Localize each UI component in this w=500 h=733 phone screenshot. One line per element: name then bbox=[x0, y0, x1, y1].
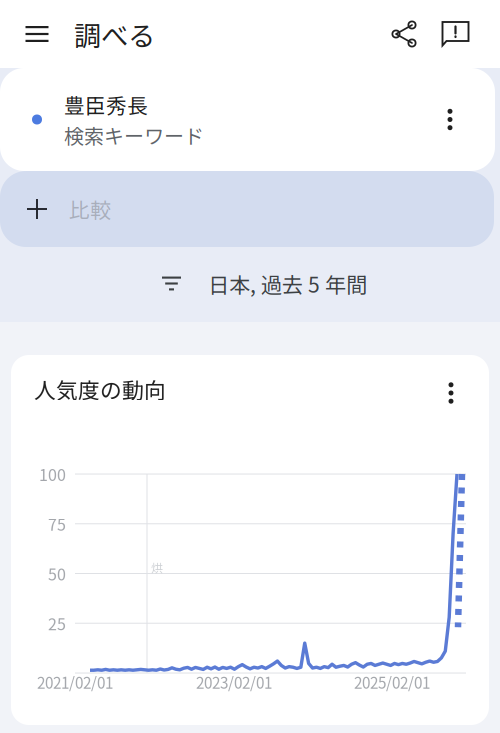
button[interactable]: 日本, 過去 5 年間 bbox=[0, 247, 500, 320]
button[interactable]: Send feedback bbox=[430, 0, 500, 68]
staticText: 2021/02/01 bbox=[37, 671, 113, 693]
staticText: 人気度の動向 bbox=[34, 373, 166, 405]
button[interactable]: Share bbox=[380, 0, 430, 68]
button[interactable]: More options bbox=[434, 376, 468, 410]
staticText: 調べる bbox=[74, 14, 155, 54]
button[interactable]: 豊臣秀長 bbox=[0, 68, 495, 171]
staticText: 検索キーワード bbox=[64, 120, 204, 149]
button[interactable]: 比較 bbox=[0, 171, 494, 247]
staticText: 2023/02/01 bbox=[196, 671, 272, 693]
staticText: 比較 bbox=[69, 194, 111, 224]
staticText: 烘 bbox=[151, 559, 163, 576]
button[interactable]: Menu bbox=[0, 0, 63, 68]
button[interactable]: More options bbox=[433, 102, 467, 136]
staticText: 豊臣秀長 bbox=[64, 90, 148, 119]
staticText: 50 bbox=[48, 562, 66, 585]
staticText: 日本, 過去 5 年間 bbox=[208, 268, 367, 299]
staticText: 100 bbox=[39, 462, 66, 486]
staticText: 2025/02/01 bbox=[354, 671, 430, 693]
staticText: 75 bbox=[48, 512, 66, 535]
staticText: 25 bbox=[48, 612, 66, 635]
